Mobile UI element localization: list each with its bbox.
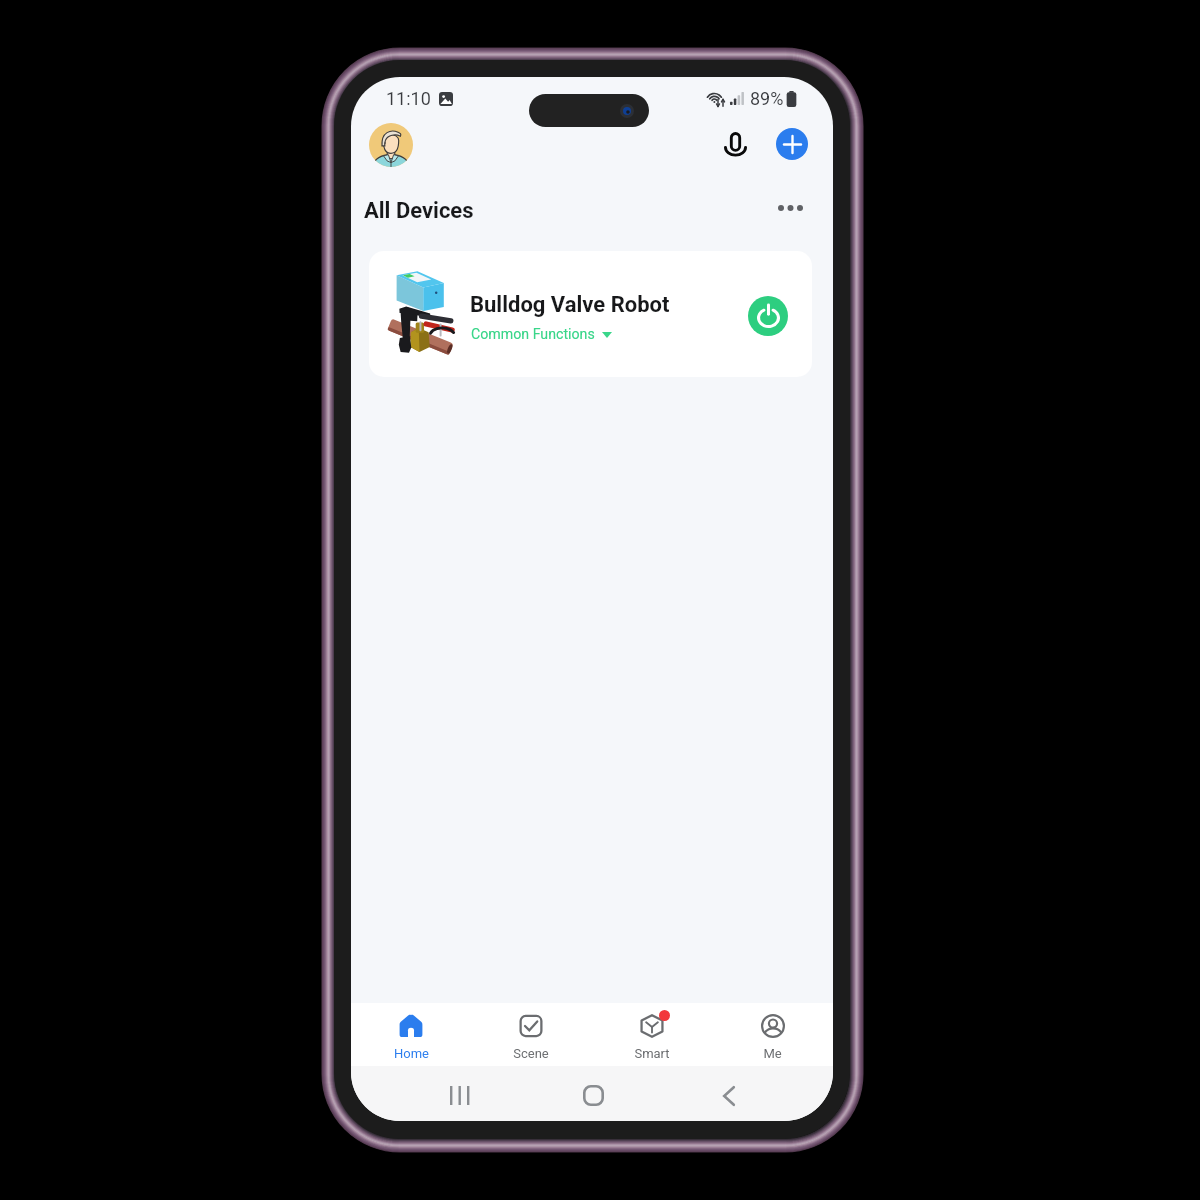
staticText: Me [763,1046,782,1061]
staticText: 89% [750,88,784,109]
button[interactable]: Home [583,1085,604,1106]
button[interactable]: More options [771,191,809,225]
button[interactable]: Profile [369,123,413,167]
button[interactable]: Voice assistant [713,123,757,167]
button[interactable]: Scene [471,1003,591,1066]
button[interactable]: Recent apps [448,1085,468,1105]
staticText: Common Functions [471,326,595,343]
button[interactable]: Bulldog Valve Robot [369,251,812,377]
button[interactable]: Back [721,1085,737,1106]
staticText: Bulldog Valve Robot [470,292,670,318]
staticText: 11:10 [386,88,431,109]
button[interactable]: Add device [776,128,808,160]
staticText: Scene [513,1046,549,1061]
staticText: Home [394,1046,429,1061]
button[interactable]: Smart [591,1003,712,1066]
staticText: Smart [634,1046,670,1061]
button[interactable]: Me [712,1003,833,1066]
staticText: All Devices [364,198,474,224]
button[interactable]: Home [351,1003,471,1066]
button[interactable]: Power toggle [748,296,788,336]
